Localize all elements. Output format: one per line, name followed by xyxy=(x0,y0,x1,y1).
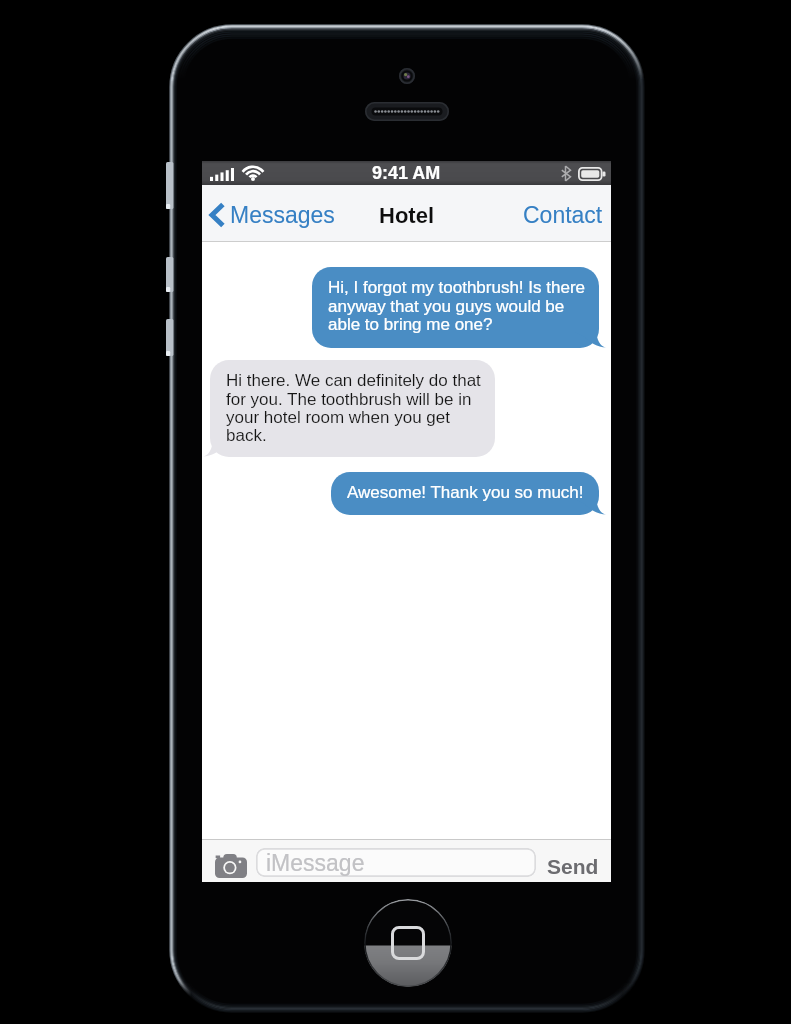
staticText: Hi, I forgot my toothbrush! Is there any… xyxy=(328,278,586,333)
staticText: Hi there. We can definitely do that for … xyxy=(226,371,481,444)
staticText: 9:41 AM xyxy=(372,163,441,183)
button[interactable]: Contact xyxy=(513,194,611,236)
staticText: Contact xyxy=(523,202,603,228)
button[interactable]: Take photo xyxy=(215,853,247,878)
button[interactable]: Send xyxy=(541,850,605,883)
button[interactable]: Hi there. We can definitely do that for … xyxy=(210,360,495,457)
staticText: iMessage xyxy=(266,850,365,876)
staticText: Send xyxy=(547,855,599,878)
button[interactable]: Hi, I forgot my toothbrush! Is there any… xyxy=(312,267,599,348)
staticText: Awesome! Thank you so much! xyxy=(347,483,584,502)
button[interactable]: Awesome! Thank you so much! xyxy=(331,472,599,515)
button[interactable]: Messages xyxy=(202,194,345,236)
staticText: Hotel xyxy=(379,203,434,228)
button[interactable]: Home xyxy=(364,899,452,987)
button[interactable]: iMessage xyxy=(256,848,536,877)
staticText: Messages xyxy=(230,202,335,228)
